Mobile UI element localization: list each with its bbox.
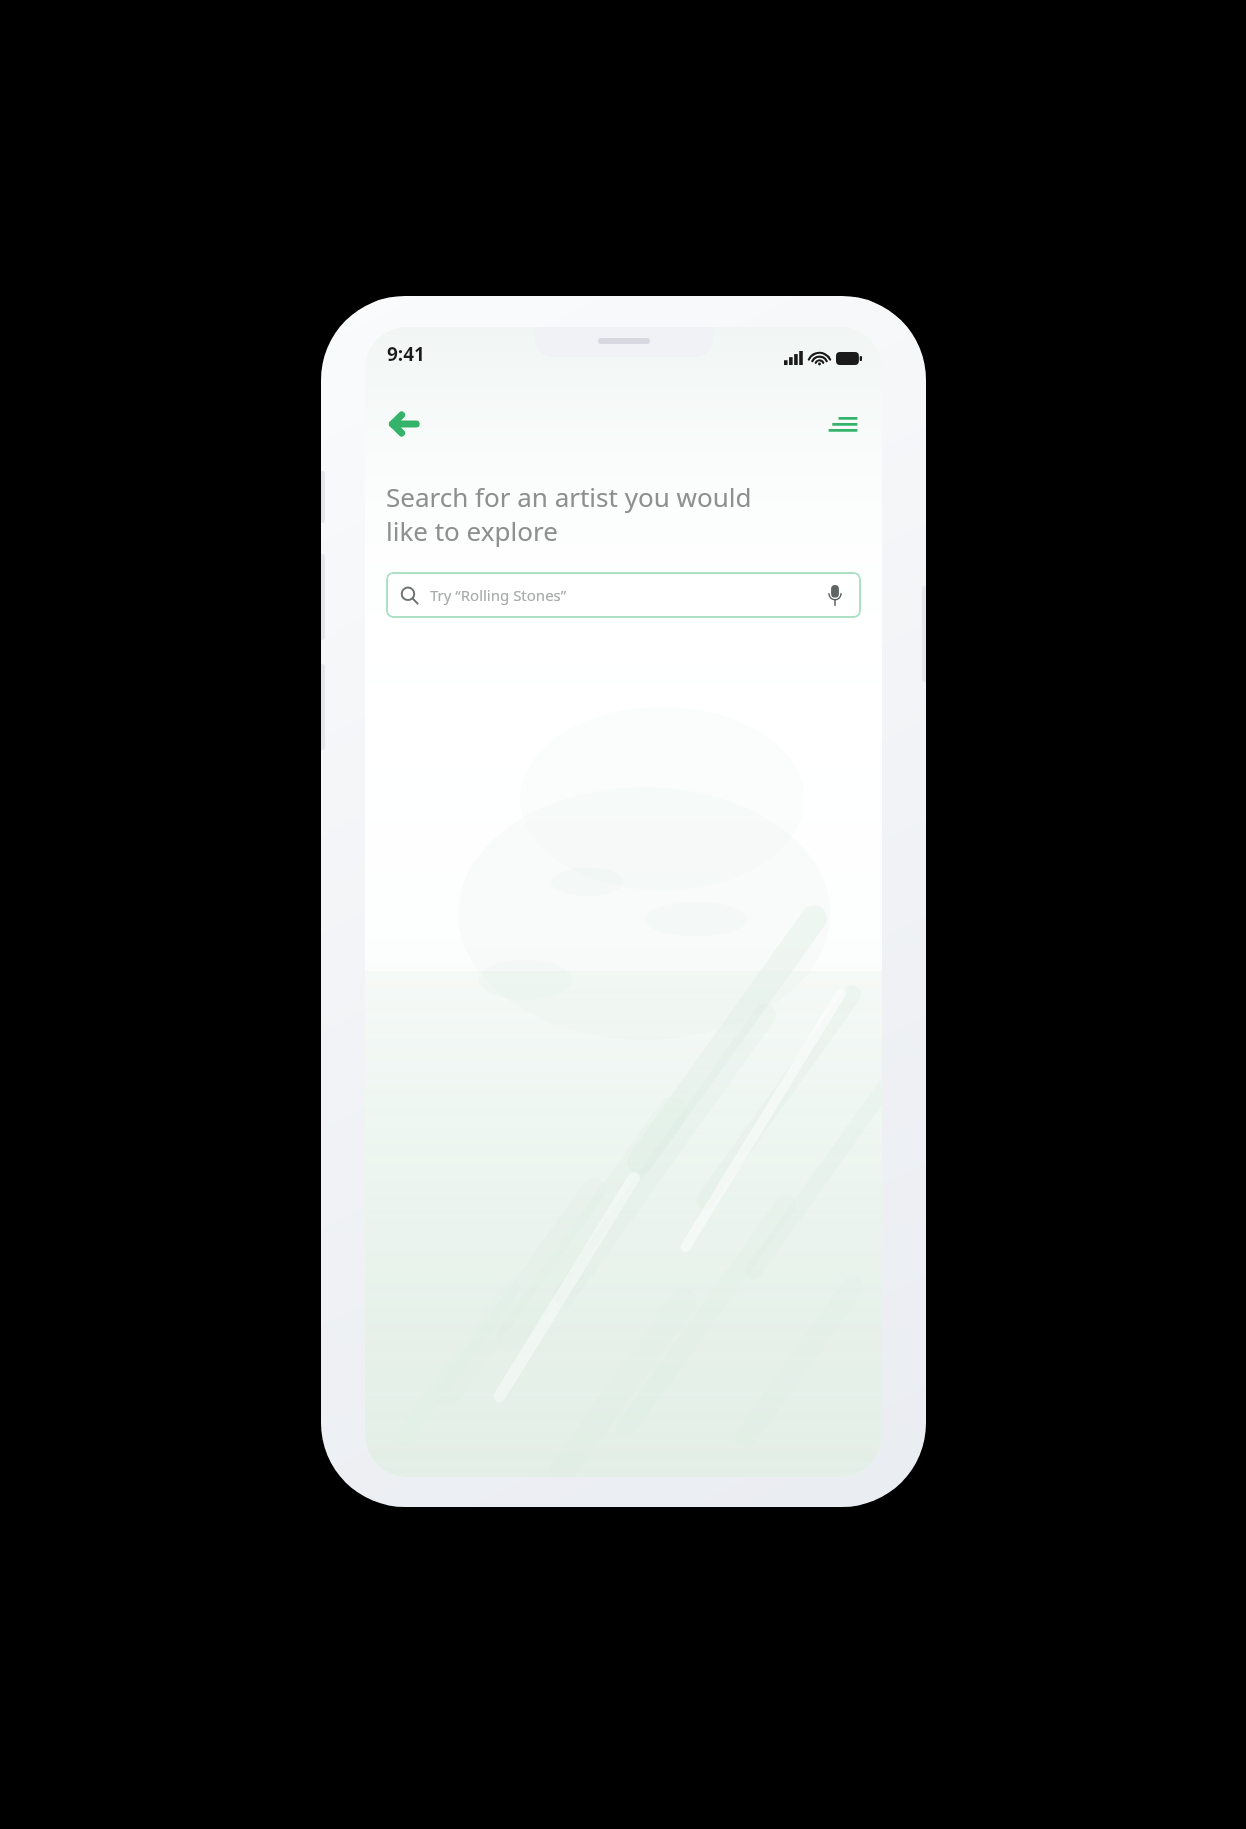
button[interactable]: Voice search bbox=[822, 582, 848, 608]
staticText: 9:41 bbox=[387, 341, 425, 367]
staticText: Try “Rolling Stones” bbox=[430, 585, 822, 605]
button[interactable]: Try “Rolling Stones” bbox=[386, 572, 861, 618]
button[interactable]: Menu bbox=[820, 401, 866, 447]
button[interactable]: Back bbox=[381, 401, 427, 447]
staticText: Search for an artist you would like to e… bbox=[386, 479, 752, 548]
